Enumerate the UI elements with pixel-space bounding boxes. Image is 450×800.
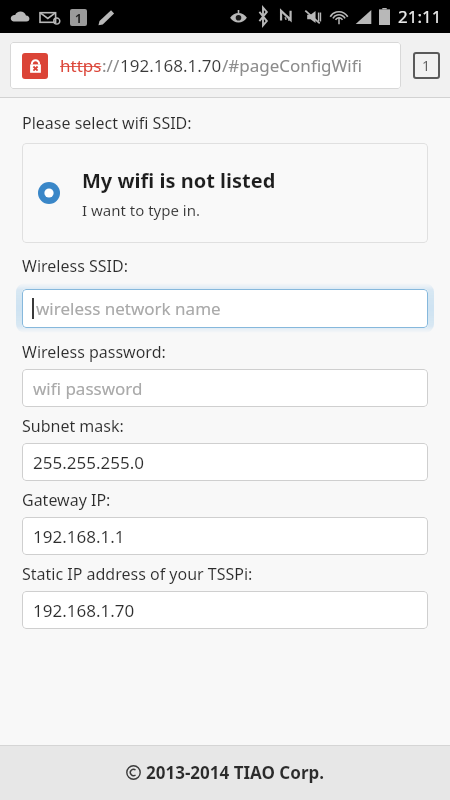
staticText: 255.255.255.0 bbox=[33, 451, 144, 474]
staticText: /#pageConfigWifi bbox=[222, 54, 362, 77]
staticText: Please select wifi SSID: bbox=[22, 112, 192, 134]
staticText: wifi password bbox=[33, 377, 143, 400]
staticText: :// bbox=[102, 54, 120, 77]
button[interactable]: 255.255.255.0 bbox=[22, 443, 428, 481]
staticText: wireless network name bbox=[36, 297, 221, 320]
button[interactable]: 192.168.1.1 bbox=[22, 517, 428, 555]
staticText: 1 bbox=[75, 10, 82, 26]
staticText: Static IP address of your TSSPi: bbox=[22, 563, 253, 585]
staticText: Subnet mask: bbox=[22, 415, 124, 437]
staticText: 192.168.1.70 bbox=[33, 599, 135, 622]
button[interactable]: Tabs bbox=[413, 52, 440, 79]
staticText: I want to type in. bbox=[82, 200, 200, 220]
button[interactable]: https bbox=[10, 42, 401, 89]
staticText: Wireless SSID: bbox=[22, 255, 128, 277]
staticText: 21:11 bbox=[398, 5, 442, 28]
staticText: https bbox=[60, 54, 102, 77]
staticText: Wireless password: bbox=[22, 341, 166, 363]
staticText: Gateway IP: bbox=[22, 489, 111, 511]
staticText: 192.168.1.70 bbox=[120, 54, 222, 77]
staticText: My wifi is not listed bbox=[82, 167, 276, 194]
button[interactable]: My wifi is not listed bbox=[22, 143, 428, 243]
button[interactable]: wifi password bbox=[22, 369, 428, 407]
staticText: 192.168.1.1 bbox=[33, 525, 125, 548]
staticText: 1 bbox=[422, 56, 431, 75]
button[interactable]: wireless network name bbox=[22, 289, 428, 328]
staticText: 2013-2014 TIAO Corp. bbox=[146, 761, 325, 784]
button[interactable]: 192.168.1.70 bbox=[22, 591, 428, 629]
